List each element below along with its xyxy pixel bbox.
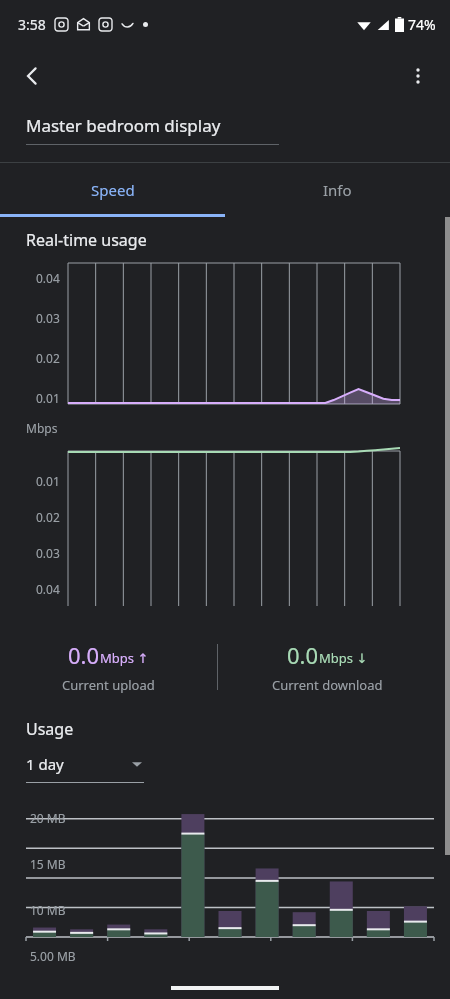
staticText: 0.03: [36, 310, 60, 326]
button[interactable]: More options: [394, 52, 442, 100]
staticText: 0.04: [36, 581, 60, 597]
staticText: 0.04: [36, 270, 60, 286]
staticText: Real-time usage: [26, 229, 147, 251]
staticText: 0.02: [36, 350, 60, 366]
staticText: Current download: [272, 676, 383, 694]
staticText: 74%: [408, 15, 436, 34]
button[interactable]: Speed: [0, 163, 225, 217]
staticText: Mbps ↓: [319, 649, 368, 667]
staticText: 1 day: [26, 754, 64, 774]
staticText: 0.02: [36, 509, 60, 525]
staticText: Speed: [91, 180, 135, 200]
staticText: 0.03: [36, 545, 60, 561]
staticText: Mbps: [26, 420, 58, 436]
staticText: Master bedroom display: [26, 114, 221, 137]
button[interactable]: 1 day: [26, 754, 144, 774]
button[interactable]: Back: [8, 52, 56, 100]
staticText: 3:58: [18, 15, 46, 34]
staticText: 15 MB: [30, 856, 66, 872]
staticText: 0.0: [287, 640, 319, 670]
staticText: 0.0: [68, 640, 100, 670]
staticText: 10 MB: [30, 902, 66, 918]
staticText: 5.00 MB: [30, 948, 76, 964]
staticText: 0.01: [36, 473, 60, 489]
staticText: 20 MB: [30, 810, 66, 826]
staticText: Mbps ↑: [100, 649, 149, 667]
staticText: Current upload: [62, 676, 155, 694]
button[interactable]: 0.0: [0, 640, 217, 694]
button[interactable]: Info: [225, 163, 450, 217]
staticText: Usage: [26, 718, 74, 740]
button[interactable]: 0.0: [218, 640, 436, 694]
staticText: 0.01: [36, 390, 60, 406]
staticText: Info: [323, 180, 352, 200]
